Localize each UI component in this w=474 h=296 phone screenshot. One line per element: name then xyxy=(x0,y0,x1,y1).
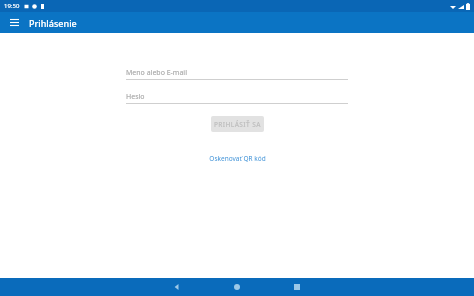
button[interactable]: Meno alebo E-mail xyxy=(126,66,348,79)
button[interactable]: Back xyxy=(160,278,194,296)
staticText: Meno alebo E-mail xyxy=(126,68,187,78)
staticText: PRIHLÁSIŤ SA xyxy=(214,120,261,129)
button[interactable]: Oskenovať QR kód xyxy=(205,152,270,165)
button[interactable]: Home xyxy=(220,278,254,296)
staticText: 19:50 xyxy=(4,2,20,10)
staticText: Prihlásenie xyxy=(29,17,77,29)
staticText: Heslo xyxy=(126,92,145,102)
button[interactable]: Open navigation menu xyxy=(6,14,23,31)
staticText: Oskenovať QR kód xyxy=(209,154,266,163)
button[interactable]: PRIHLÁSIŤ SA xyxy=(211,116,264,132)
button[interactable]: Heslo xyxy=(126,90,348,103)
button[interactable]: Recent apps xyxy=(280,278,314,296)
